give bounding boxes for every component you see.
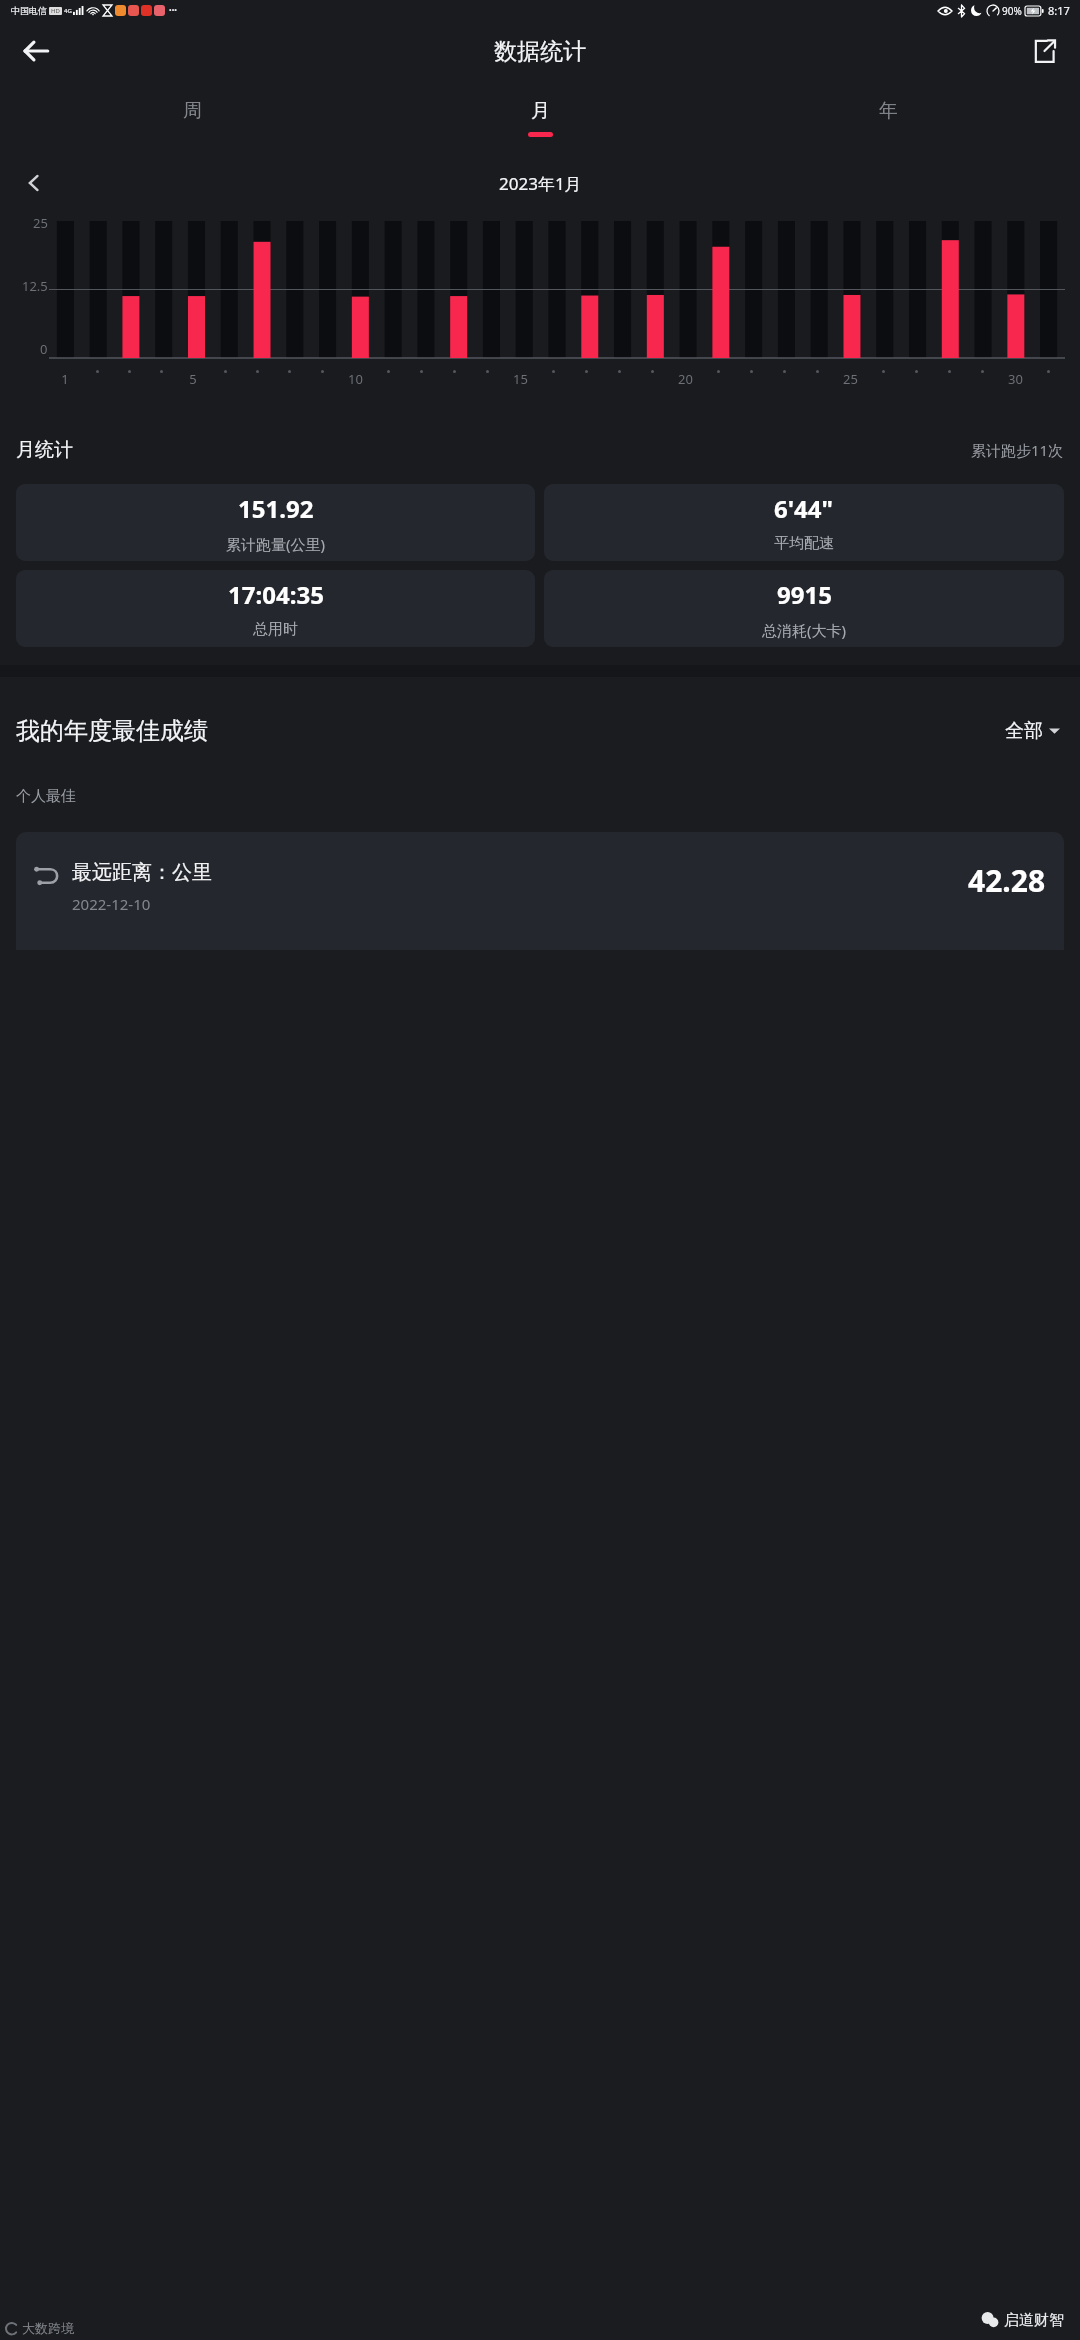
- staticText: 10: [348, 370, 363, 388]
- staticText: 周: [183, 99, 202, 123]
- staticText: 全部: [1005, 719, 1043, 743]
- staticText: 最远距离：公里: [72, 860, 212, 885]
- staticText: 启道财智: [1004, 2311, 1064, 2330]
- staticText: 平均配速: [774, 534, 834, 553]
- button[interactable]: Share: [1020, 27, 1068, 75]
- button[interactable]: 6'44": [544, 484, 1064, 561]
- button[interactable]: 17:04:35: [16, 570, 535, 647]
- staticText: 2022-12-10: [72, 894, 151, 914]
- button[interactable]: 全部: [1001, 715, 1064, 747]
- staticText: 月统计: [16, 438, 73, 462]
- staticText: 年: [879, 99, 898, 123]
- staticText: 0: [40, 340, 48, 358]
- staticText: 1: [61, 370, 69, 388]
- staticText: 8:17: [1048, 3, 1070, 18]
- staticText: 20: [678, 370, 693, 388]
- staticText: 12.5: [22, 277, 48, 295]
- staticText: HD: [51, 7, 60, 15]
- staticText: 2023年1月: [499, 172, 582, 195]
- staticText: 大数跨境: [22, 2320, 74, 2336]
- button[interactable]: 9915: [544, 570, 1064, 647]
- staticText: 9915: [777, 578, 832, 611]
- staticText: 累计跑步11次: [971, 440, 1064, 460]
- staticText: 25: [33, 214, 48, 232]
- staticText: 个人最佳: [16, 787, 76, 806]
- staticText: 25: [843, 370, 858, 388]
- staticText: 4G: [64, 7, 72, 15]
- staticText: 累计跑量(公里): [226, 534, 326, 554]
- staticText: 总消耗(大卡): [762, 620, 847, 640]
- staticText: 总用时: [253, 620, 298, 639]
- staticText: •••: [169, 6, 177, 16]
- staticText: 30: [1008, 370, 1023, 388]
- staticText: 90%: [1002, 4, 1022, 18]
- button[interactable]: 151.92: [16, 484, 535, 561]
- staticText: 17:04:35: [228, 578, 324, 611]
- staticText: 6'44": [774, 492, 834, 525]
- staticText: 月: [531, 99, 550, 123]
- staticText: 15: [513, 370, 528, 388]
- staticText: 数据统计: [494, 37, 586, 66]
- staticText: 42.28: [968, 860, 1046, 901]
- button[interactable]: Previous month: [10, 159, 58, 207]
- button[interactable]: 最远距离：公里: [16, 832, 1064, 950]
- staticText: 中国电信: [11, 5, 47, 16]
- staticText: 5: [189, 370, 197, 388]
- button[interactable]: 周: [18, 82, 366, 154]
- staticText: 我的年度最佳成绩: [16, 716, 208, 746]
- button[interactable]: Back: [12, 27, 60, 75]
- staticText: 151.92: [238, 492, 314, 525]
- button[interactable]: 月: [366, 82, 714, 154]
- button[interactable]: 年: [714, 82, 1062, 154]
